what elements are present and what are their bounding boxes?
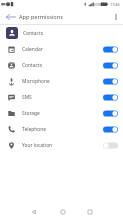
button[interactable]: Calendar <box>0 41 123 57</box>
staticText: 17:46 <box>110 2 120 7</box>
button[interactable]: Your location <box>0 137 123 153</box>
button[interactable]: SMS <box>0 89 123 105</box>
button[interactable]: Toggle permission <box>103 125 118 134</box>
button[interactable]: Contacts <box>0 25 123 41</box>
staticText: Your location <box>22 142 53 149</box>
button[interactable]: Toggle permission <box>103 45 118 54</box>
button[interactable]: Toggle permission <box>103 61 118 70</box>
staticText: Contacts <box>23 30 44 37</box>
button[interactable]: Toggle permission <box>103 77 118 86</box>
staticText: Telephone <box>22 126 46 133</box>
staticText: 50% <box>93 2 101 7</box>
button[interactable]: Telephone <box>0 121 123 137</box>
button[interactable]: Back <box>26 203 42 220</box>
button[interactable]: Home <box>55 203 71 220</box>
button[interactable]: Toggle permission <box>103 109 118 118</box>
staticText: App permissions <box>19 13 63 21</box>
staticText: SMS <box>22 94 32 101</box>
staticText: Storage <box>22 110 40 117</box>
button[interactable]: Toggle permission <box>103 141 118 150</box>
button[interactable]: Microphone <box>0 73 123 89</box>
staticText: Contacts <box>22 62 43 69</box>
button[interactable]: More options <box>109 9 123 24</box>
button[interactable]: Toggle permission <box>103 93 118 102</box>
staticText: Microphone <box>22 78 50 85</box>
button[interactable]: Back <box>0 9 19 24</box>
button[interactable]: Recent apps <box>82 203 98 220</box>
button[interactable]: Storage <box>0 105 123 121</box>
button[interactable]: Contacts <box>0 57 123 73</box>
staticText: Calendar <box>22 46 43 53</box>
